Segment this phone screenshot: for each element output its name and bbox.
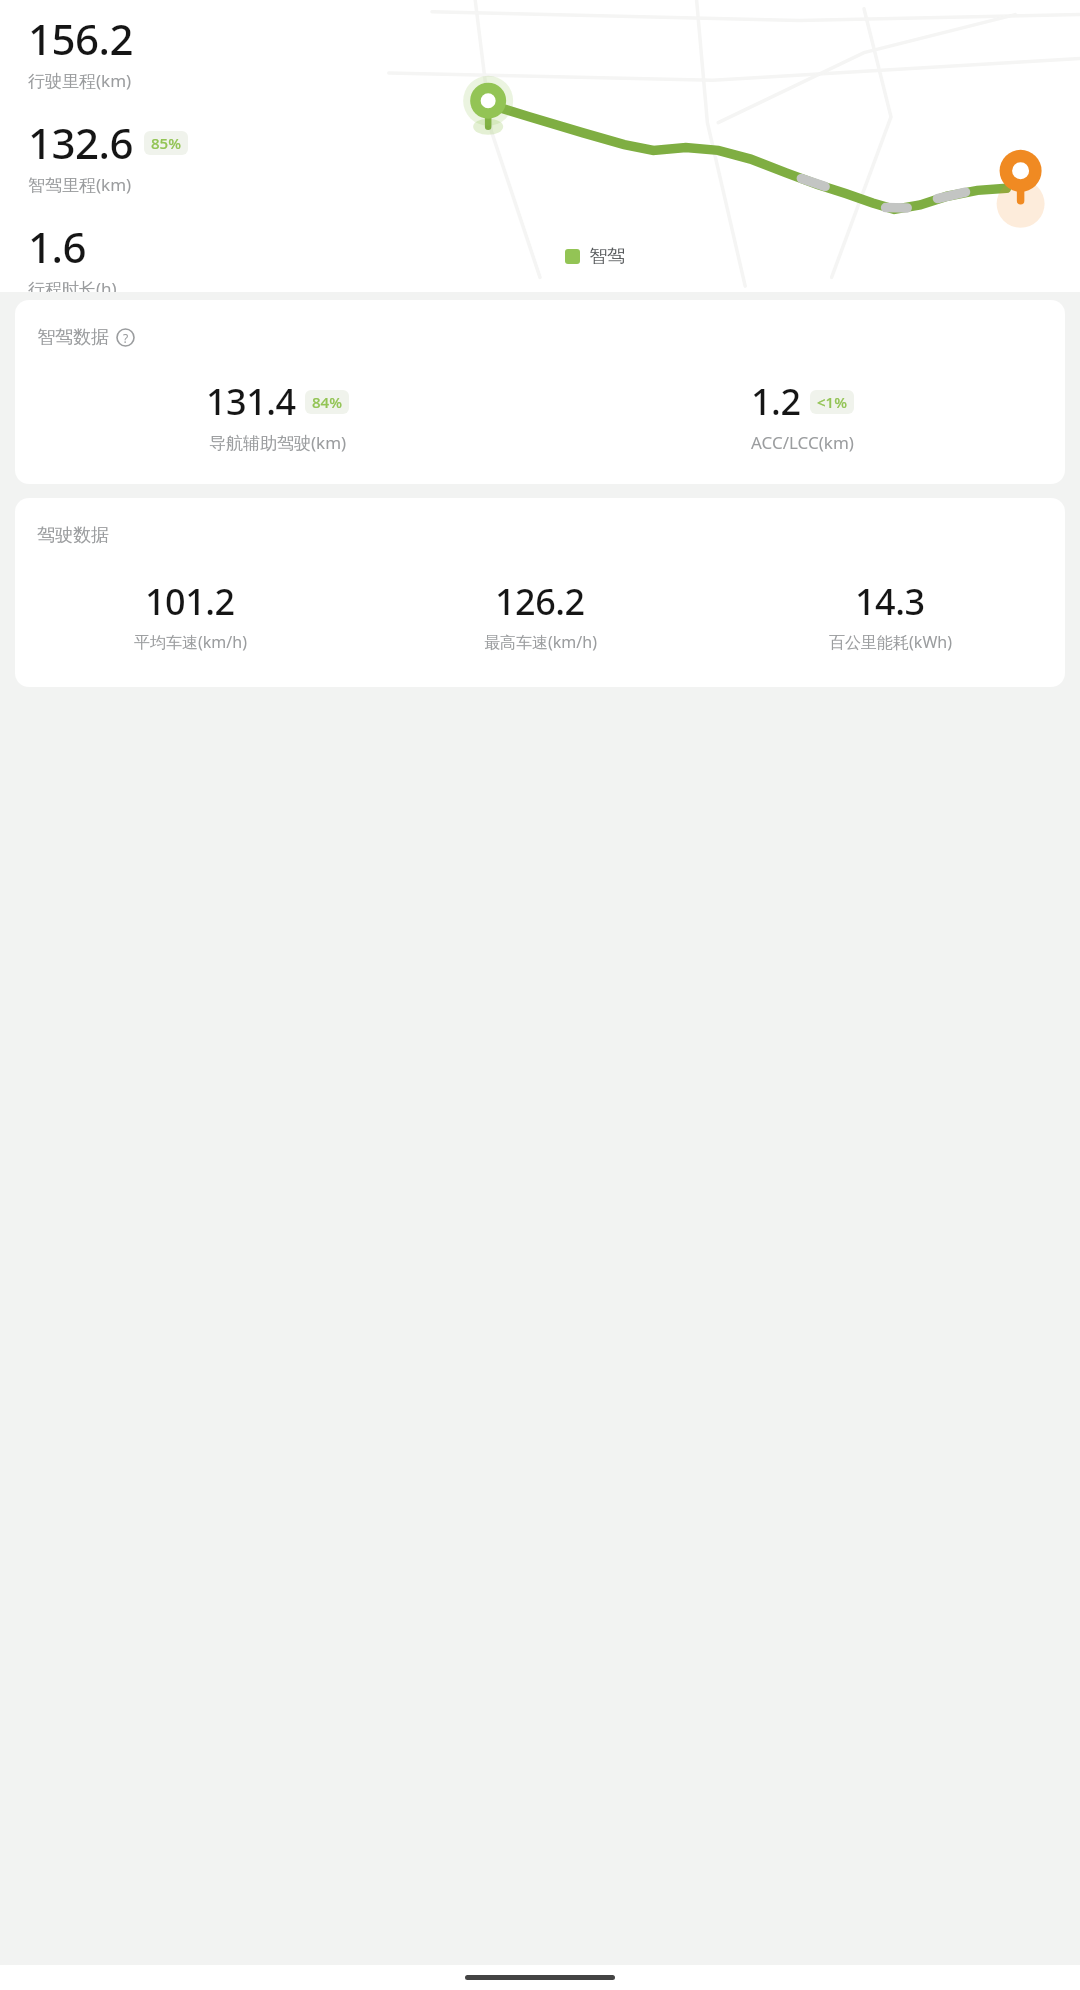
staticText: ? bbox=[123, 330, 129, 346]
staticText: 131.4 bbox=[206, 377, 296, 426]
staticText: 1.6 bbox=[28, 218, 86, 275]
staticText: 最高车速(km/h) bbox=[484, 631, 597, 653]
staticText: 126.2 bbox=[495, 577, 585, 626]
staticText: 百公里能耗(kWh) bbox=[829, 631, 952, 653]
staticText: 驾驶数据 bbox=[37, 524, 109, 547]
staticText: 导航辅助驾驶(km) bbox=[209, 431, 347, 454]
staticText: 84% bbox=[312, 392, 342, 412]
staticText: ACC/LCC(km) bbox=[751, 431, 854, 454]
button[interactable]: 帮助 bbox=[116, 328, 135, 347]
staticText: 14.3 bbox=[855, 577, 925, 626]
staticText: 85% bbox=[151, 133, 181, 153]
staticText: 101.2 bbox=[145, 577, 235, 626]
staticText: 行驶里程(km) bbox=[28, 69, 132, 92]
staticText: 156.2 bbox=[28, 10, 134, 67]
staticText: 1.2 bbox=[751, 377, 801, 426]
button[interactable]: 智驾数据 bbox=[15, 300, 1065, 484]
staticText: 平均车速(km/h) bbox=[134, 631, 247, 653]
staticText: 132.6 bbox=[28, 114, 134, 171]
staticText: <1% bbox=[817, 392, 847, 412]
staticText: 智驾 bbox=[589, 245, 625, 268]
staticText: 智驾里程(km) bbox=[28, 173, 132, 196]
staticText: 行程时长(h) bbox=[28, 277, 117, 292]
button[interactable]: 驾驶数据 bbox=[15, 498, 1065, 687]
staticText: 智驾数据 bbox=[37, 326, 109, 349]
